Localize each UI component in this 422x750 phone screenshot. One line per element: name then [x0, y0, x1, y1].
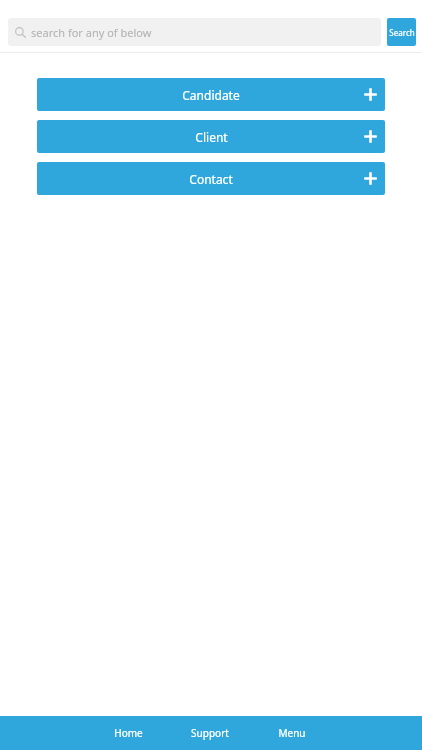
- button[interactable]: Client: [37, 120, 385, 153]
- button[interactable]: Search: [387, 18, 416, 46]
- staticText: search for any of below: [31, 25, 152, 40]
- staticText: Client: [195, 129, 228, 145]
- button[interactable]: Contact: [37, 162, 385, 195]
- staticText: Home: [114, 726, 143, 740]
- button[interactable]: search for any of below: [8, 18, 381, 46]
- button[interactable]: Candidate: [37, 78, 385, 111]
- staticText: Support: [191, 726, 229, 740]
- staticText: Candidate: [182, 87, 240, 103]
- staticText: Contact: [189, 171, 233, 187]
- staticText: Menu: [278, 726, 306, 740]
- staticText: Search: [389, 27, 415, 38]
- button[interactable]: Menu: [251, 716, 333, 750]
- button[interactable]: Support: [169, 716, 251, 750]
- button[interactable]: Home: [87, 716, 169, 750]
